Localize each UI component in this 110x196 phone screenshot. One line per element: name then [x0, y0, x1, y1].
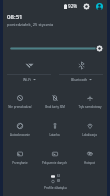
staticText: Brak karty SIM	[45, 105, 65, 109]
button[interactable]: Nie przeszkadzać	[3, 91, 37, 119]
staticText: 92%	[68, 3, 78, 9]
button[interactable]: Wi-Fi	[3, 56, 55, 86]
staticText: Lokalizacja	[82, 133, 97, 137]
staticText: Nie przeszkadzać	[8, 105, 32, 109]
staticText: poniedziałek, 25 stycznia	[7, 22, 54, 27]
button[interactable]: Przesyłanie	[3, 147, 37, 175]
staticText: Hotspot	[84, 161, 95, 165]
staticText: Przesyłanie	[12, 161, 28, 165]
button[interactable]: Brak karty SIM	[37, 91, 72, 119]
staticText: 08:51	[7, 12, 23, 20]
button[interactable]: Bluetooth	[55, 56, 107, 86]
button[interactable]: Brightness slider	[10, 43, 103, 54]
button[interactable]: Lokalizacja	[72, 119, 107, 147]
staticText: 63	[57, 174, 60, 178]
button[interactable]: User account	[95, 2, 104, 11]
button[interactable]: Hotspot	[72, 147, 107, 175]
staticText: Tryb samolotowy	[78, 105, 102, 109]
button[interactable]: Settings	[82, 2, 91, 11]
button[interactable]: Autoobracanie	[3, 119, 37, 147]
staticText: Profile dźwięku	[44, 186, 67, 190]
staticText: Bluetooth	[71, 77, 88, 82]
button[interactable]: Tryb samolotowy	[72, 91, 107, 119]
staticText: Wi-Fi	[23, 77, 32, 82]
staticText: Połączenie danych	[42, 161, 67, 165]
button[interactable]: Połączenie danych	[37, 147, 72, 175]
button[interactable]: Latarka	[37, 119, 72, 147]
staticText: 88	[57, 179, 60, 183]
staticText: Latarka	[49, 133, 60, 137]
staticText: Autoobracanie	[10, 133, 30, 137]
